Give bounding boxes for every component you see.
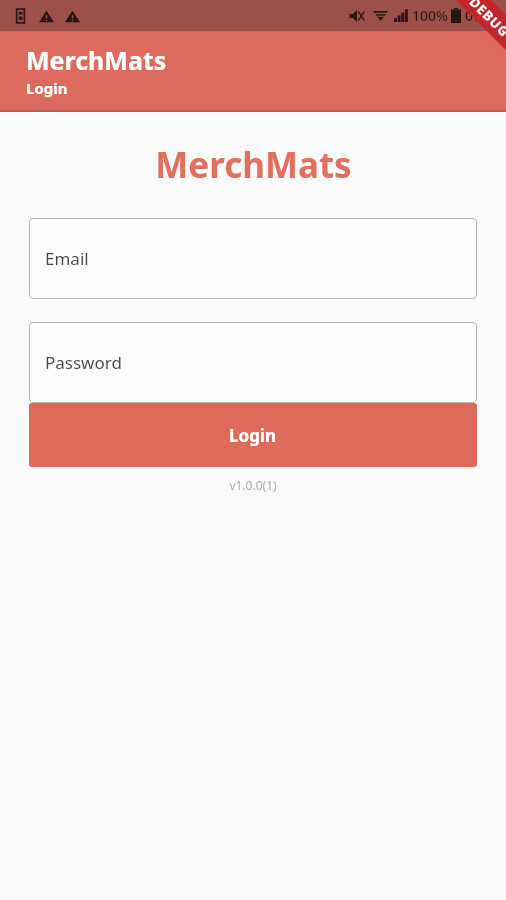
staticText: MerchMats xyxy=(155,141,352,189)
button[interactable]: Password xyxy=(29,322,477,403)
staticText: 07:54 xyxy=(465,6,501,25)
staticText: DEBUG xyxy=(466,0,506,41)
button[interactable]: Email xyxy=(29,218,477,299)
staticText: Password xyxy=(45,351,122,374)
staticText: v1.0.0(1) xyxy=(229,477,277,493)
staticText: Email xyxy=(45,247,89,270)
button[interactable]: Login xyxy=(29,403,477,467)
other: Debug build banner xyxy=(446,0,506,61)
staticText: Login xyxy=(229,424,277,447)
staticText: 100% xyxy=(412,6,448,25)
staticText: MerchMats xyxy=(26,43,167,77)
staticText: Login xyxy=(26,78,68,98)
